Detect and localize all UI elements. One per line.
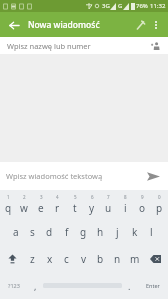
staticText: m [130,252,140,266]
button[interactable]: 8 [117,190,134,218]
staticText: 76% [136,2,148,10]
staticText: Wpisz nazwę lub numer [7,41,91,51]
staticText: . [128,280,131,292]
staticText: t [73,201,77,215]
staticText: i [124,201,127,215]
staticText: r [55,201,60,215]
button[interactable]: m [126,245,143,272]
staticText: ?123 [8,282,20,289]
staticText: j [116,225,119,239]
button[interactable]: b [92,245,109,272]
staticText: k [132,225,138,239]
button[interactable]: f [58,218,75,245]
button[interactable]: . [122,272,137,299]
staticText: x [47,252,53,266]
button[interactable]: More options [149,18,163,32]
button[interactable]: 3 [32,190,49,218]
button[interactable]: 4 [49,190,66,218]
button[interactable]: ?123 [0,272,28,299]
button[interactable]: c [58,245,75,272]
button[interactable]: n [109,245,126,272]
button[interactable]: Space [43,278,122,293]
button[interactable]: 1 [0,190,16,218]
staticText: , [34,280,37,292]
button[interactable]: Shift [0,245,24,272]
staticText: h [97,225,104,239]
staticText: Wpisz wiadomość tekstową [6,171,103,181]
button[interactable]: 7 [100,190,117,218]
button[interactable]: 9 [134,190,151,218]
button[interactable]: a [7,218,24,245]
staticText: 3G [102,2,110,10]
staticText: q [5,201,12,215]
staticText: w [20,201,28,215]
staticText: 8 [124,194,127,200]
button[interactable]: Send [143,166,163,186]
button[interactable]: Add recipient [149,39,162,52]
button[interactable]: l [143,218,160,245]
staticText: z [30,252,35,266]
button[interactable]: g [75,218,92,245]
staticText: 0 [158,194,161,200]
staticText: Nowa wiadomość [28,19,100,31]
staticText: y [89,201,95,215]
staticText: a [13,225,19,239]
button[interactable]: 0 [151,190,168,218]
button[interactable]: Attach [131,16,149,34]
staticText: G [118,2,123,10]
staticText: Enter [146,282,160,289]
staticText: g [80,225,87,239]
staticText: s [30,225,35,239]
staticText: 11:32 [150,2,166,10]
button[interactable]: d [41,218,58,245]
staticText: p [156,201,163,215]
button[interactable]: z [24,245,41,272]
staticText: 2 [23,194,26,200]
staticText: f [65,225,69,239]
staticText: 5 [74,194,77,200]
button[interactable]: 6 [83,190,100,218]
staticText: 9 [141,194,144,200]
button[interactable]: Backspace [143,245,168,272]
button[interactable]: 2 [16,190,32,218]
staticText: c [64,252,69,266]
button[interactable]: k [126,218,143,245]
button[interactable]: Back [5,16,23,34]
button[interactable]: x [41,245,58,272]
staticText: 6 [91,194,94,200]
staticText: d [46,225,53,239]
staticText: v [81,252,87,266]
button[interactable]: s [24,218,41,245]
staticText: e [38,201,44,215]
button[interactable]: h [92,218,109,245]
staticText: 7 [107,194,110,200]
staticText: b [97,252,104,266]
button[interactable]: v [75,245,92,272]
staticText: l [150,225,153,239]
staticText: 3 [40,194,43,200]
button[interactable]: Enter [137,272,168,299]
staticText: 4 [56,194,59,200]
staticText: o [139,201,146,215]
staticText: 1 [7,194,10,200]
button[interactable]: 5 [66,190,83,218]
staticText: u [105,201,112,215]
staticText: n [114,252,121,266]
button[interactable]: j [109,218,126,245]
button[interactable]: , [28,272,43,299]
